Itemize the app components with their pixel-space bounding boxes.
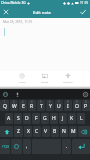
staticText: 9 [76,100,78,104]
staticText: V [44,128,48,135]
staticText: 2 [13,100,15,104]
staticText: Location [63,80,73,83]
button[interactable]: Emoji [11,139,22,154]
button[interactable]: 6 [46,100,54,111]
button[interactable]: 3 [19,100,27,111]
button[interactable]: X [24,126,32,137]
staticText: E [22,103,25,110]
button[interactable]: H [50,113,58,124]
button[interactable]: G [41,113,49,124]
staticText: Alarm [19,80,26,83]
staticText: Q [3,103,7,110]
staticText: ?123 [2,145,9,149]
button[interactable]: Stickers [1,90,9,98]
staticText: F [35,115,38,122]
staticText: 11:15 [80,1,89,5]
button[interactable]: Z [14,126,23,137]
button[interactable]: Save [77,6,89,18]
staticText: H [52,115,56,122]
button[interactable]: 1 [0,100,9,111]
staticText: 5 [40,100,42,104]
staticText: W [12,103,17,110]
button[interactable]: 9 [73,100,81,111]
button[interactable]: 0 [82,100,90,111]
staticText: 0 [85,100,87,104]
staticText: S [17,115,20,122]
staticText: . [66,143,68,150]
staticText: 6 [49,100,51,104]
button[interactable]: J [59,113,67,124]
staticText: Mar 26, 2015, 11:15 [3,20,33,24]
staticText: K [70,115,74,122]
staticText: P [84,103,88,110]
button[interactable]: Voice input [13,90,21,98]
staticText: , [26,143,28,150]
button[interactable]: F [32,113,40,124]
staticText: A [7,115,11,122]
staticText: Image [41,80,49,83]
button[interactable]: D [23,113,31,124]
button[interactable]: Shift [0,126,13,137]
button[interactable]: M [69,126,77,137]
staticText: Y [49,103,52,110]
staticText: L [80,115,83,122]
button[interactable]: Alarm [11,71,33,86]
staticText: D [25,115,29,122]
staticText: Edit note [33,9,52,15]
button[interactable]: N [60,126,68,137]
staticText: B [53,128,57,135]
button[interactable]: L [77,113,85,124]
button[interactable]: C [33,126,41,137]
button[interactable]: . [62,139,71,154]
staticText: X [27,128,30,135]
button[interactable]: 2 [10,100,18,111]
staticText: T [40,103,43,110]
button[interactable]: 4 [28,100,36,111]
button[interactable]: A [5,113,13,124]
staticText: China Mobile 3G [1,1,26,5]
staticText: I [67,103,69,110]
staticText: O [75,103,79,110]
button[interactable]: 8 [64,100,72,111]
button[interactable]: B [51,126,59,137]
button[interactable]: V [42,126,50,137]
staticText: J [62,115,64,122]
button[interactable]: 5 [37,100,45,111]
staticText: 4 [31,100,33,104]
staticText: G [43,115,47,122]
button[interactable]: ?123 [0,139,10,154]
button[interactable]: Location [56,71,79,86]
staticText: 1 [4,100,6,104]
button[interactable]: S [14,113,22,124]
button[interactable]: , [23,139,31,154]
staticText: C [35,128,39,135]
staticText: 8 [67,100,69,104]
button[interactable]: 7 [55,100,63,111]
button[interactable]: Image [33,71,56,86]
staticText: 7 [58,100,60,104]
staticText: Z [17,128,20,135]
button[interactable]: Backspace [78,126,90,137]
button[interactable]: Enter [72,139,90,154]
button[interactable]: Close [0,6,12,18]
staticText: U [57,103,61,110]
button[interactable]: K [68,113,76,124]
staticText: N [62,128,66,135]
button[interactable]: Keyboard settings [81,90,89,98]
staticText: 3 [22,100,24,104]
staticText: M [71,128,76,135]
staticText: R [30,103,34,110]
